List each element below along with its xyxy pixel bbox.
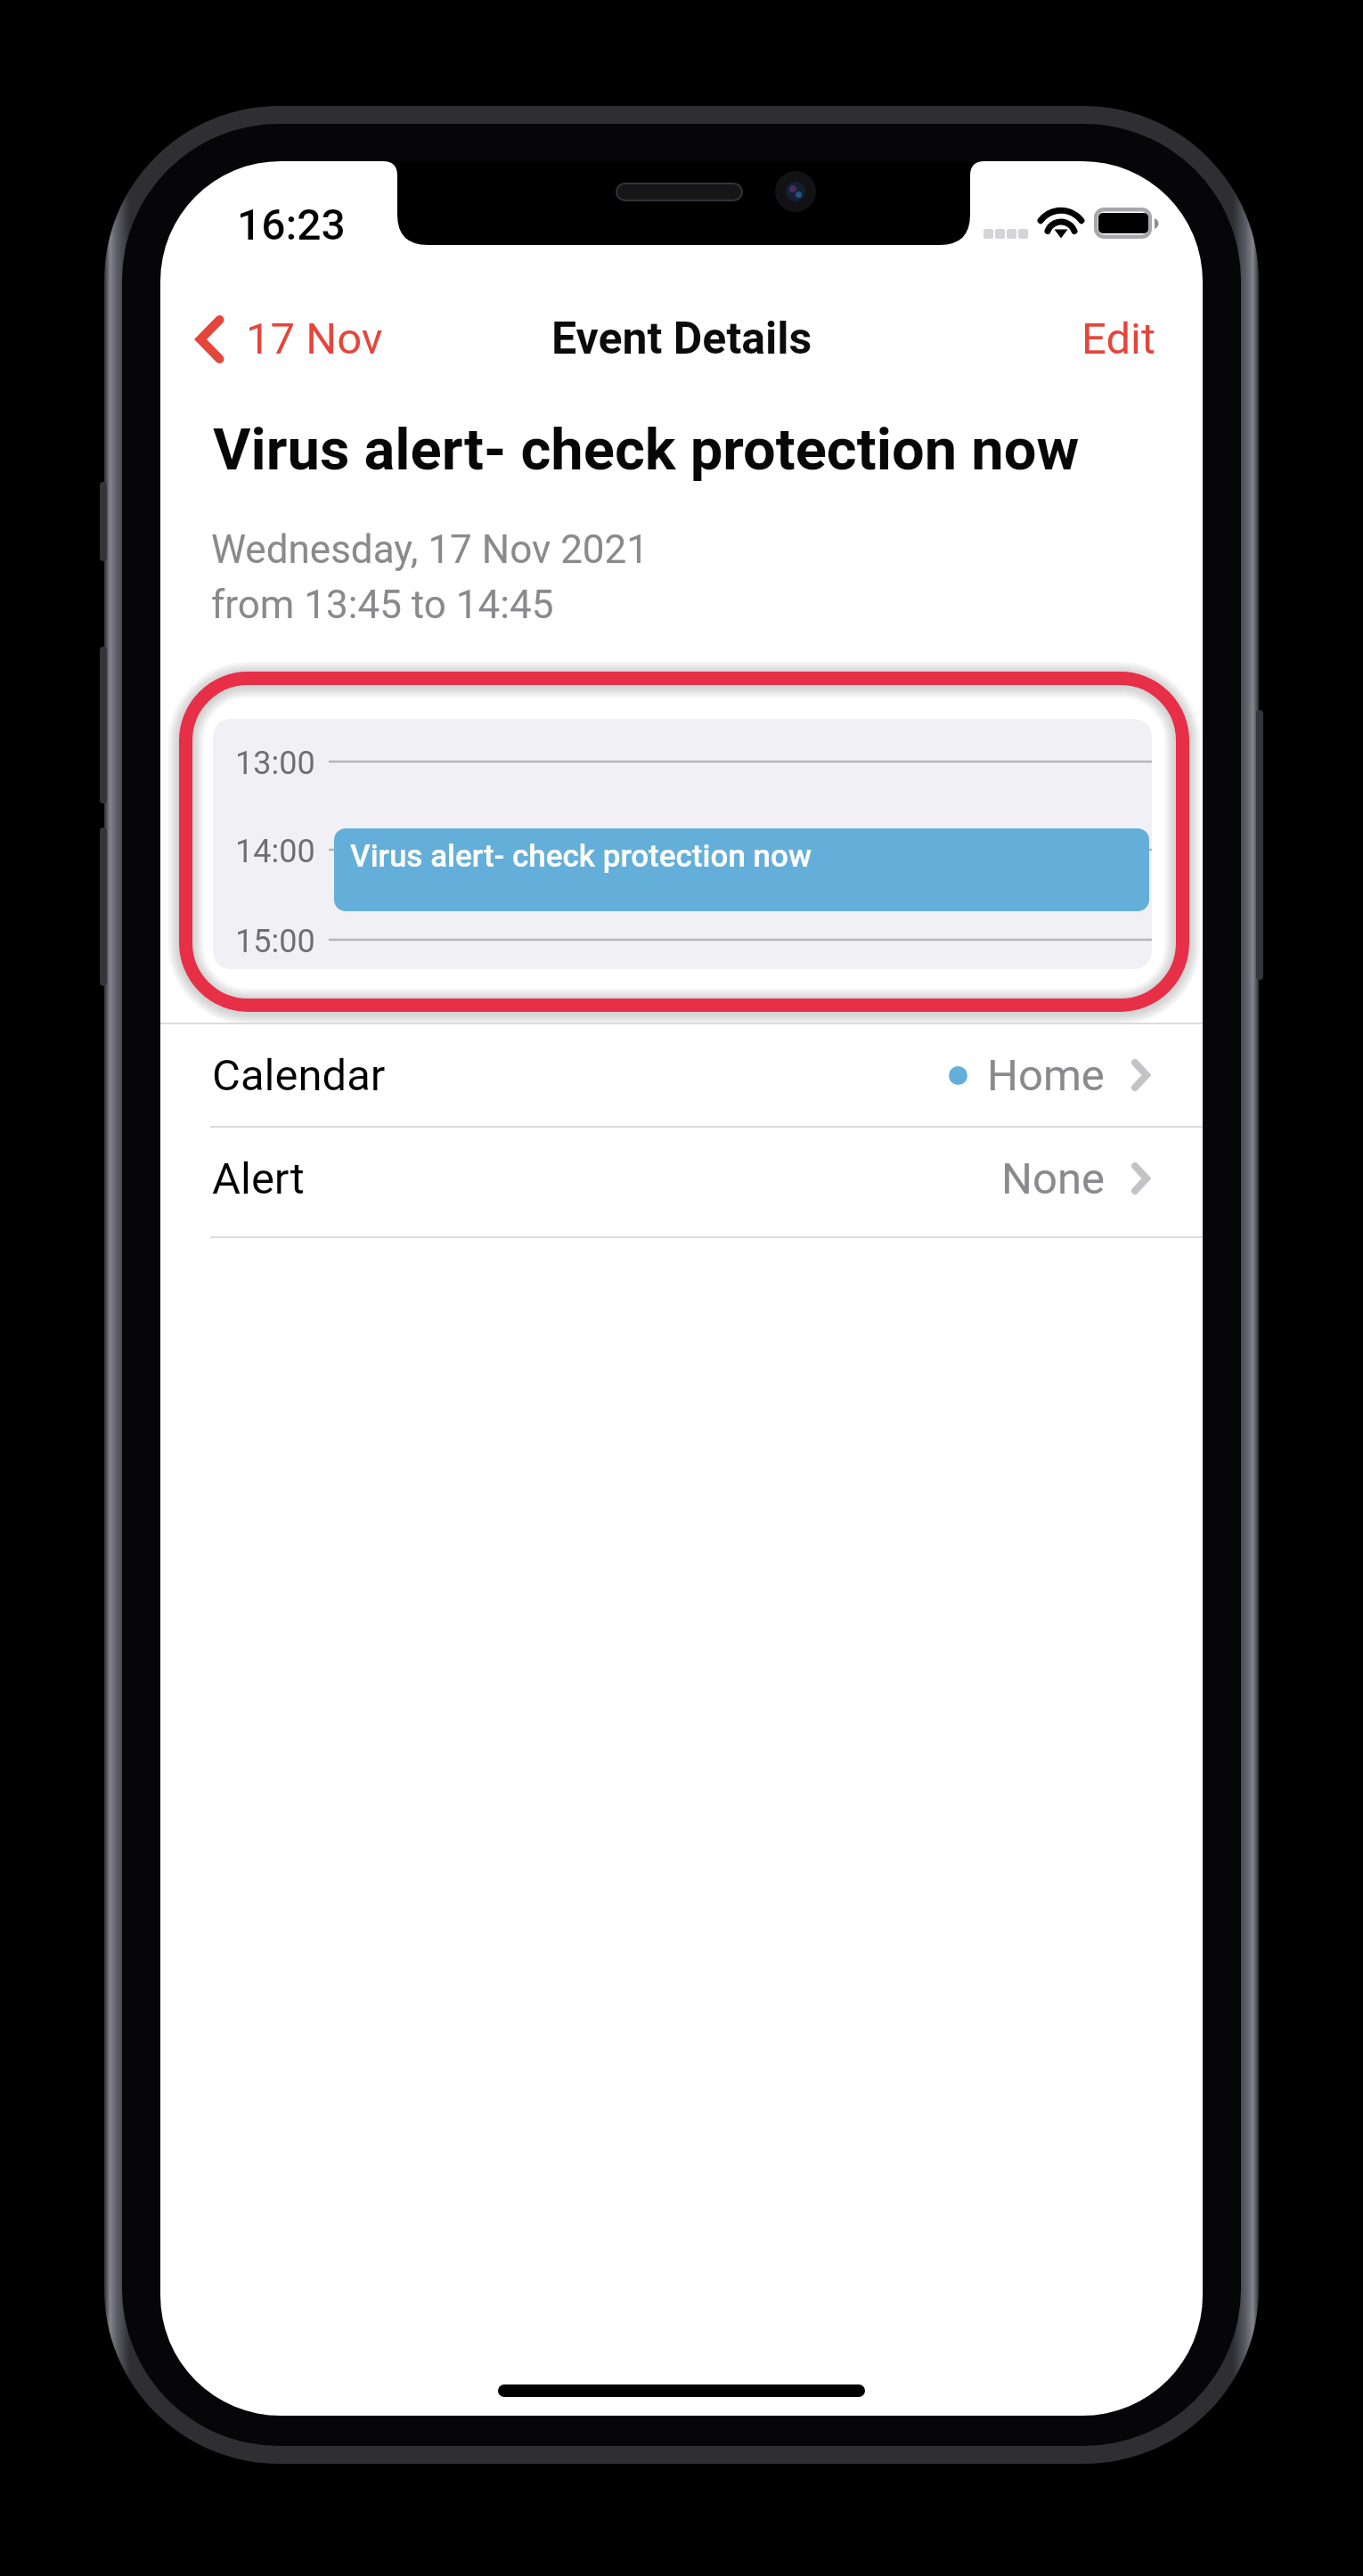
staticText: from 13:45 to 14:45 [211,582,554,628]
staticText: 13:00 [235,745,315,782]
staticText: 15:00 [235,923,315,960]
staticText: 16:23 [237,200,346,249]
staticText: 14:00 [235,833,315,870]
staticText: None [1001,1153,1105,1204]
button[interactable]: Edit [1055,308,1182,369]
staticText: Event Details [551,313,812,365]
staticText: Edit [1081,314,1155,364]
button[interactable]: Calendar [160,1024,1203,1126]
staticText: Alert [212,1153,305,1204]
staticText: Virus alert- check protection now [350,838,812,875]
button[interactable]: Alert [160,1128,1203,1229]
staticText: Virus alert- check protection now [213,416,1080,484]
staticText: Wednesday, 17 Nov 2021 [211,526,649,573]
staticText: Calendar [212,1050,386,1101]
button[interactable]: Virus alert- check protection now [334,828,1149,911]
staticText: Home [987,1050,1105,1101]
staticText: 17 Nov [246,314,383,364]
button[interactable]: Back to 17 Nov [175,308,396,369]
button[interactable]: Day preview 13:00 to 15:00 [213,719,1152,969]
